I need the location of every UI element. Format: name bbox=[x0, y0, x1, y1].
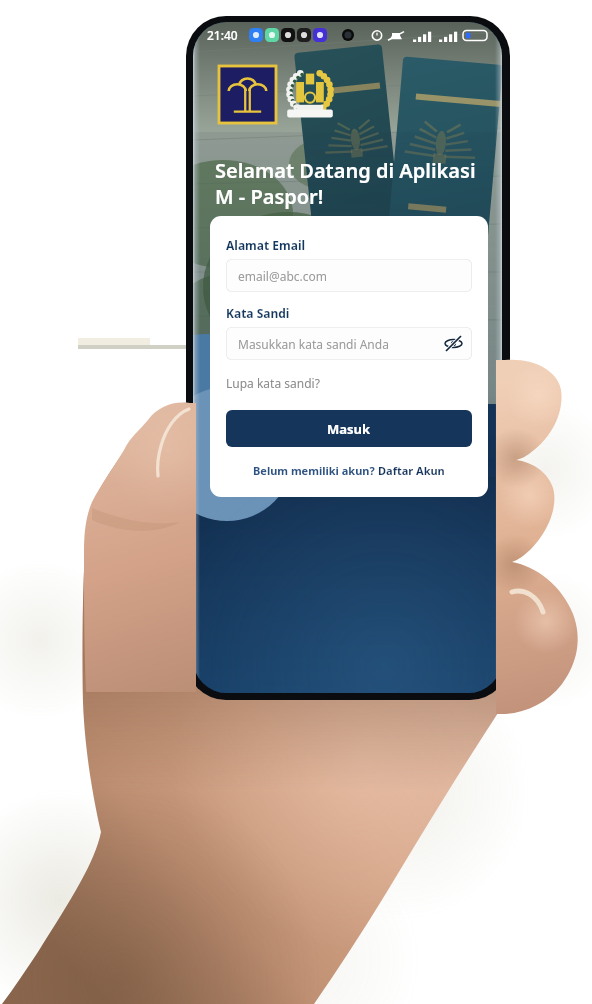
staticText: Belum memiliki akun? bbox=[253, 463, 378, 478]
button[interactable]: Masuk bbox=[226, 410, 472, 447]
staticText: Kata Sandi bbox=[226, 305, 290, 321]
button[interactable]: email@abc.com bbox=[226, 259, 472, 292]
button[interactable]: Masukkan kata sandi Anda bbox=[226, 327, 472, 360]
staticText: email@abc.com bbox=[238, 268, 328, 284]
staticText: Selamat Datang di Aplikasi M - Paspor! bbox=[215, 157, 476, 210]
button[interactable]: Belum memiliki akun? bbox=[210, 463, 488, 478]
staticText: Masuk bbox=[327, 420, 371, 438]
button[interactable]: Lupa kata sandi? bbox=[226, 375, 320, 391]
staticText: 21:40 bbox=[207, 27, 238, 43]
button[interactable]: Show password bbox=[445, 335, 462, 352]
staticText: Alamat Email bbox=[226, 237, 306, 253]
staticText: Daftar Akun bbox=[378, 463, 445, 478]
staticText: Masukkan kata sandi Anda bbox=[238, 336, 389, 352]
